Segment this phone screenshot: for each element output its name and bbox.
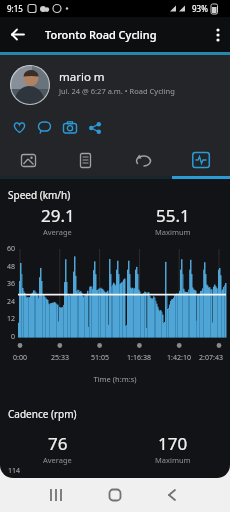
button[interactable]: mario m <box>10 65 230 105</box>
staticText: Cadence (rpm) <box>8 407 77 421</box>
button[interactable] <box>57 144 114 176</box>
staticText: 24 <box>0 297 15 307</box>
staticText: Maximum <box>155 227 191 237</box>
staticText: 1:16:38 <box>121 353 157 363</box>
button[interactable] <box>57 115 82 140</box>
button[interactable] <box>0 17 35 52</box>
button[interactable] <box>44 483 68 507</box>
staticText: 0:00 <box>2 353 38 363</box>
staticText: 29.1 <box>41 204 75 227</box>
staticText: 1:42:10 <box>161 353 197 363</box>
staticText: Maximum <box>155 455 191 465</box>
staticText: 114 <box>8 466 21 476</box>
staticText: 36 <box>0 279 15 289</box>
button[interactable] <box>82 115 107 140</box>
staticText: 93% <box>192 3 208 14</box>
staticText: mario m <box>59 69 105 85</box>
staticText: 76 <box>48 432 68 455</box>
staticText: Toronto Road Cycling <box>45 27 157 42</box>
button[interactable] <box>32 115 57 140</box>
staticText: 9:15 <box>7 3 23 14</box>
staticText: 0 <box>0 332 15 342</box>
staticText: Average <box>43 455 72 465</box>
button[interactable] <box>114 144 172 176</box>
staticText: 51:05 <box>82 353 118 363</box>
staticText: 2:07:43 <box>193 353 229 363</box>
staticText: 55.1 <box>156 204 190 227</box>
staticText: Jul. 24 @ 6:27 a.m. • Road Cycling <box>59 86 175 96</box>
staticText: Time (h:m:s) <box>0 374 230 384</box>
staticText: 60 <box>0 244 15 254</box>
button[interactable] <box>7 115 32 140</box>
staticText: 25:33 <box>42 353 78 363</box>
staticText: 170 <box>158 432 188 455</box>
button[interactable] <box>172 144 230 176</box>
staticText: 12 <box>0 314 15 324</box>
button[interactable] <box>200 20 230 50</box>
staticText: Average <box>43 227 72 237</box>
button[interactable] <box>160 483 184 507</box>
staticText: 48 <box>0 262 15 272</box>
staticText: Speed (km/h) <box>8 188 71 202</box>
button[interactable] <box>0 144 57 176</box>
button[interactable] <box>103 483 127 507</box>
